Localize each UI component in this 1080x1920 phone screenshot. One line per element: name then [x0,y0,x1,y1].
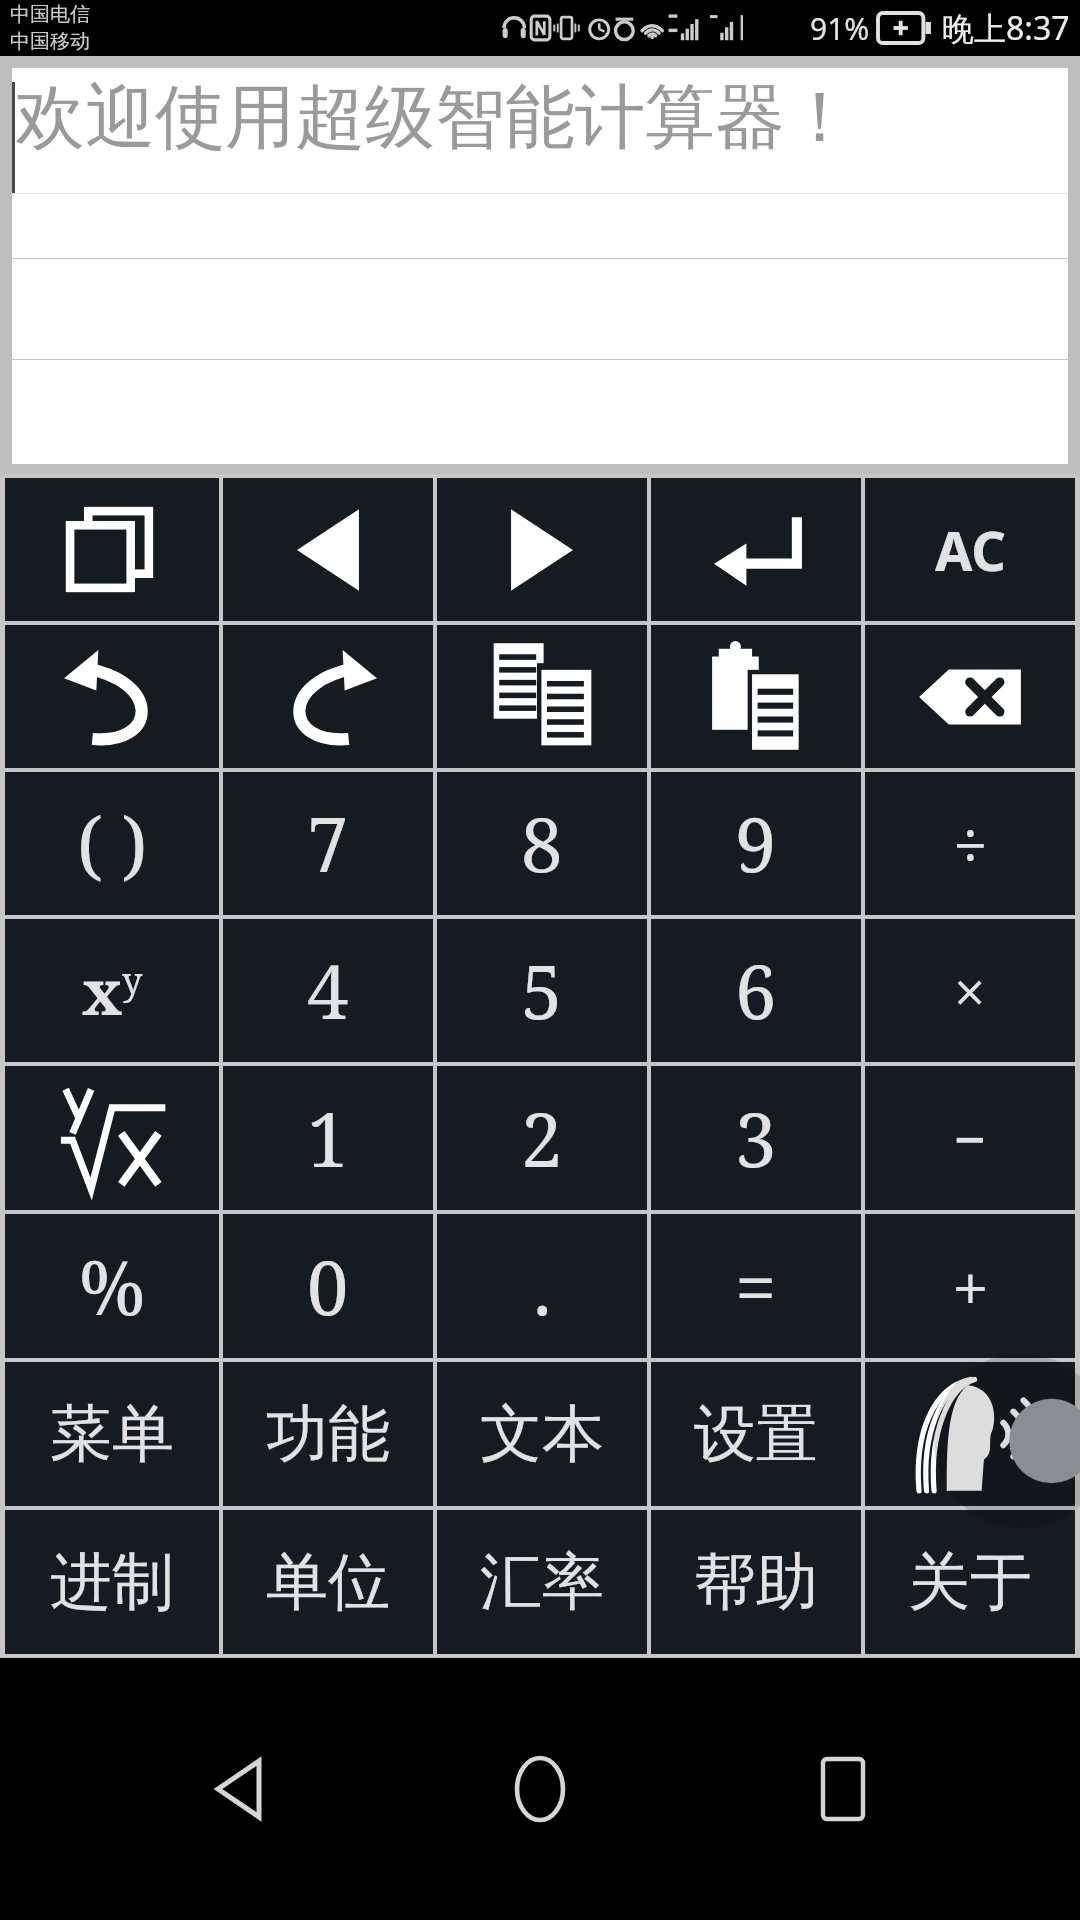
staticText: ( ) [77,793,148,894]
staticText: 功能 [266,1395,390,1473]
button[interactable]: Home [475,1724,605,1854]
staticText: + [952,1241,989,1331]
staticText: 设置 [694,1395,818,1473]
staticText: 91% [810,8,870,49]
button[interactable]: − [865,1066,1075,1210]
staticText: 晚上8:37 [942,6,1070,50]
button[interactable]: Copy [437,625,647,768]
staticText: 关于 [908,1543,1032,1621]
button[interactable]: 文本 [437,1362,647,1506]
button[interactable]: 7 [223,772,433,915]
button[interactable]: Paste [651,625,861,768]
staticText: 欢迎使用超级智能计算器！ [15,74,855,162]
staticText: xy [82,949,143,1033]
button[interactable]: 汇率 [437,1510,647,1654]
staticText: 7 [307,793,349,894]
button[interactable]: × [865,919,1075,1062]
staticText: = [735,1236,777,1337]
staticText: . [533,1236,552,1337]
staticText: ÷ [953,802,988,886]
button[interactable]: 5 [437,919,647,1062]
button[interactable]: Nth root [5,1066,219,1210]
staticText: 8 [521,793,563,894]
button[interactable]: + [865,1214,1075,1358]
button[interactable]: Enter [651,478,861,621]
button[interactable]: 0 [223,1214,433,1358]
staticText: 0 [307,1236,349,1337]
button[interactable]: Redo [223,625,433,768]
staticText: 单位 [266,1543,390,1621]
staticText: 帮助 [694,1543,818,1621]
staticText: 5 [521,940,563,1041]
staticText: 进制 [50,1543,174,1621]
button[interactable]: 帮助 [651,1510,861,1654]
button[interactable]: . [437,1214,647,1358]
staticText: 中国移动 [10,29,90,54]
button[interactable]: 1 [223,1066,433,1210]
button[interactable]: 设置 [651,1362,861,1506]
button[interactable]: 4 [223,919,433,1062]
staticText: × [954,953,986,1029]
staticText: % [79,1236,146,1337]
button[interactable]: 2 [437,1066,647,1210]
button[interactable]: 单位 [223,1510,433,1654]
staticText: AC [935,513,1006,587]
button[interactable]: 3 [651,1066,861,1210]
button[interactable]: Backspace [865,625,1075,768]
button[interactable]: Assistive touch [1012,1395,1080,1487]
staticText: 3 [735,1088,777,1189]
button[interactable]: 进制 [5,1510,219,1654]
button[interactable]: Back [173,1724,303,1854]
staticText: 文本 [480,1395,604,1473]
button[interactable]: Move right [437,478,647,621]
staticText: − [953,1099,987,1178]
button[interactable]: xy [5,919,219,1062]
button[interactable]: ( ) [5,772,219,915]
button[interactable]: Windows [5,478,219,621]
button[interactable]: 关于 [865,1510,1075,1654]
staticText: 1 [307,1088,349,1189]
staticText: 6 [735,940,777,1041]
button[interactable]: Recent apps [778,1724,908,1854]
button[interactable]: = [651,1214,861,1358]
button[interactable]: 6 [651,919,861,1062]
staticText: 2 [521,1088,563,1189]
button[interactable]: % [5,1214,219,1358]
staticText: 中国电信 [10,2,90,27]
staticText: 9 [735,793,777,894]
button[interactable]: 8 [437,772,647,915]
button[interactable]: 9 [651,772,861,915]
button[interactable]: Voice input [865,1362,1075,1506]
button[interactable]: 欢迎使用超级智能计算器！ [12,68,1068,258]
button[interactable]: AC [865,478,1075,621]
button[interactable]: 菜单 [5,1362,219,1506]
staticText: 汇率 [480,1543,604,1621]
staticText: 4 [307,940,349,1041]
staticText: 菜单 [50,1395,174,1473]
button[interactable]: ÷ [865,772,1075,915]
button[interactable]: Undo [5,625,219,768]
button[interactable]: 功能 [223,1362,433,1506]
button[interactable]: Move left [223,478,433,621]
